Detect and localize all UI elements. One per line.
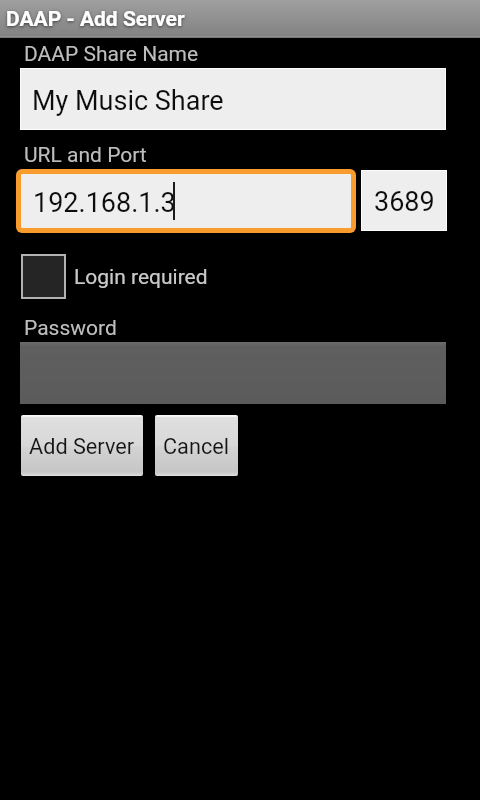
staticText: 192.168.1.3 <box>33 187 176 219</box>
staticText: Cancel <box>163 434 230 459</box>
other: Login required check box <box>21 254 66 299</box>
staticText: DAAP - Add Server <box>6 7 185 32</box>
staticText: Password <box>24 316 117 341</box>
button[interactable]: 192.168.1.3 <box>21 174 351 228</box>
staticText: Login required <box>74 265 208 290</box>
staticText: 3689 <box>374 186 435 218</box>
button[interactable]: Login required check box <box>21 254 208 299</box>
staticText: My Music Share <box>32 85 224 117</box>
staticText: DAAP Share Name <box>24 42 199 67</box>
button[interactable]: Cancel <box>155 415 238 476</box>
button[interactable]: My Music Share <box>21 69 445 129</box>
button[interactable]: Add Server <box>21 415 143 476</box>
button[interactable]: 3689 <box>362 171 446 230</box>
staticText: Add Server <box>29 434 135 459</box>
staticText: URL and Port <box>24 143 147 168</box>
